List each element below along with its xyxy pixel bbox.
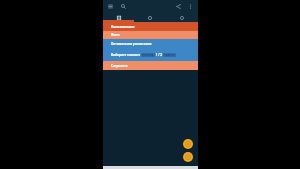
staticText: Итого: [111, 33, 120, 37]
button[interactable]: Add item: [183, 139, 193, 149]
button[interactable]: Overview tab: [103, 13, 134, 22]
staticText: Оптимальное расписание: [111, 42, 152, 46]
button[interactable]: More options: [186, 2, 195, 11]
button[interactable]: недели: [163, 53, 176, 57]
button[interactable]: Оптимальное расписание: [103, 39, 198, 49]
button[interactable]: Settings tab: [166, 13, 198, 22]
button[interactable]: Search: [119, 2, 128, 11]
button[interactable]: Выберите элемент: [103, 49, 198, 61]
staticText: Сохранить: [111, 64, 128, 68]
button[interactable]: Details tab: [134, 13, 166, 22]
button[interactable]: Share: [174, 2, 183, 11]
staticText: Выберите элемент: [111, 53, 141, 57]
staticText: недели: [164, 53, 175, 57]
staticText: сегодня: [142, 53, 154, 57]
button[interactable]: Наименование: [103, 22, 198, 31]
button[interactable]: Итого: [103, 31, 198, 39]
staticText: 1 / 2: [155, 53, 163, 57]
button[interactable]: New message: [183, 152, 193, 162]
button[interactable]: Navigate up: [106, 2, 115, 11]
button[interactable]: Сохранить: [103, 61, 198, 70]
staticText: Наименование: [111, 25, 135, 29]
button[interactable]: сегодня: [141, 53, 155, 57]
